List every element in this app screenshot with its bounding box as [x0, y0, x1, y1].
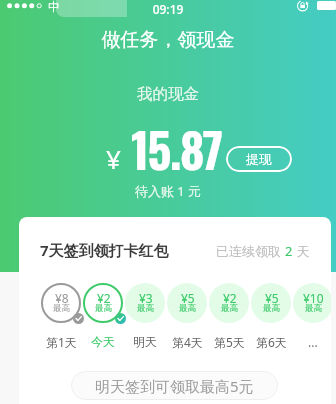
- button[interactable]: ¥10: [293, 283, 331, 323]
- staticText: 最高: [95, 303, 112, 314]
- staticText: ¥10: [303, 290, 324, 306]
- button[interactable]: ¥5: [251, 283, 291, 323]
- staticText: 第6天: [256, 334, 287, 350]
- button[interactable]: ¥2: [209, 283, 249, 323]
- staticText: ¥3: [139, 290, 153, 306]
- button[interactable]: ¥8: [41, 283, 81, 323]
- staticText: 15.87: [131, 114, 222, 184]
- button[interactable]: ¥5: [167, 283, 207, 323]
- staticText: 最高: [263, 303, 280, 314]
- button[interactable]: ¥3: [125, 283, 165, 323]
- button[interactable]: 提现: [226, 146, 292, 172]
- staticText: 最高: [137, 303, 154, 314]
- staticText: 已连续领取: [216, 242, 285, 260]
- staticText: 最高: [305, 303, 322, 314]
- staticText: 最高: [221, 303, 238, 314]
- staticText: 09:19: [0, 1, 336, 17]
- button[interactable]: ¥2: [83, 283, 123, 323]
- staticText: ¥8: [55, 290, 69, 306]
- staticText: 待入账 1 元: [0, 182, 336, 200]
- staticText: 明天: [133, 334, 157, 349]
- staticText: 中: [48, 0, 60, 14]
- staticText: ¥5: [265, 290, 279, 306]
- staticText: 提现: [246, 151, 272, 167]
- staticText: 第5天: [214, 334, 245, 350]
- other: Rotation lock: [297, 0, 309, 12]
- button[interactable]: 明天签到可领取最高5元: [71, 371, 278, 400]
- staticText: ¥5: [181, 290, 195, 306]
- staticText: 7天签到领打卡红包: [40, 240, 169, 260]
- staticText: ¥2: [223, 290, 237, 306]
- staticText: 明天签到可领取最高5元: [95, 376, 254, 396]
- staticText: ¥: [106, 141, 121, 176]
- staticText: ...: [308, 334, 318, 350]
- staticText: 我的现金: [0, 84, 336, 104]
- staticText: 最高: [53, 303, 70, 314]
- staticText: 2: [285, 242, 293, 260]
- staticText: 最高: [179, 303, 196, 314]
- staticText: 第4天: [172, 334, 203, 350]
- staticText: ¥2: [97, 290, 111, 306]
- staticText: 今天: [91, 334, 115, 349]
- staticText: 第1天: [46, 334, 77, 350]
- staticText: 天: [293, 242, 310, 260]
- staticText: 做任务，领现金: [0, 28, 336, 52]
